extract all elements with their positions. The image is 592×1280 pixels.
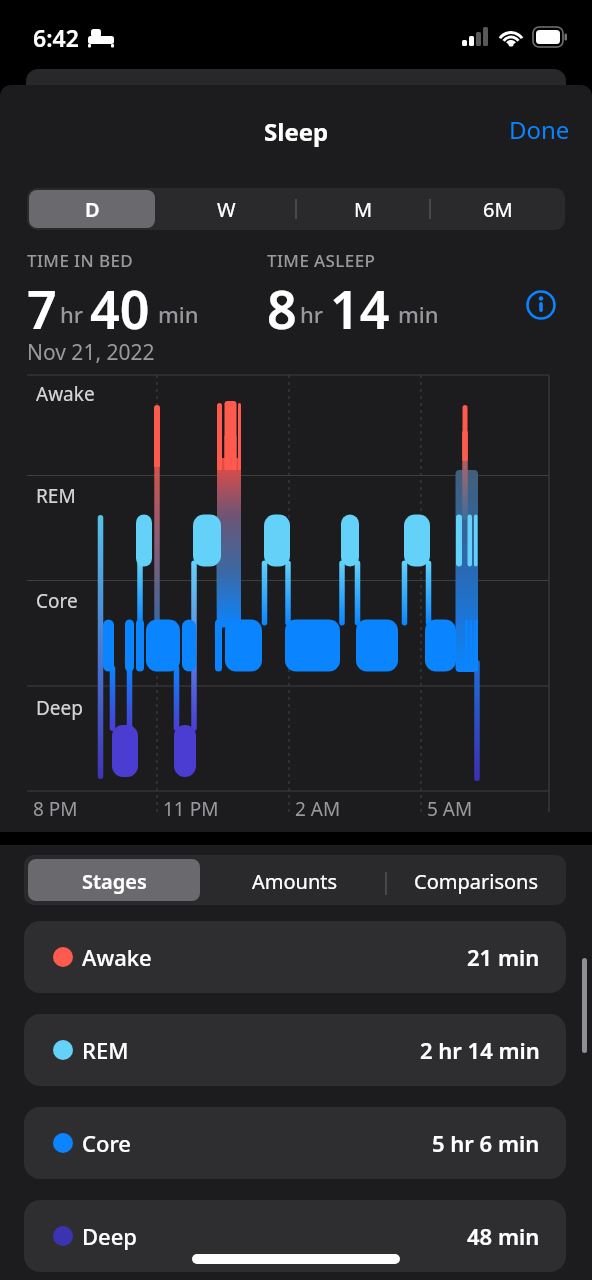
staticText: min bbox=[158, 299, 199, 329]
staticText: M bbox=[354, 196, 373, 223]
staticText: 6M bbox=[483, 196, 513, 223]
staticText: Deep bbox=[36, 695, 83, 721]
button[interactable] bbox=[29, 190, 155, 228]
button[interactable] bbox=[203, 855, 385, 905]
button[interactable]: Awake bbox=[24, 921, 566, 993]
staticText: 14 bbox=[330, 273, 390, 344]
staticText: 11 PM bbox=[163, 796, 219, 822]
staticText: 8 PM bbox=[33, 796, 78, 822]
staticText: hr bbox=[60, 299, 84, 329]
staticText: Awake bbox=[82, 942, 152, 972]
staticText: 40 bbox=[90, 273, 150, 344]
staticText: Amounts bbox=[252, 868, 338, 895]
staticText: REM bbox=[82, 1035, 129, 1065]
staticText: 2 hr 14 min bbox=[420, 1035, 540, 1065]
button[interactable]: 6M bbox=[430, 188, 565, 230]
staticText: min bbox=[398, 299, 439, 329]
staticText: hr bbox=[300, 299, 324, 329]
staticText: Core bbox=[36, 588, 78, 614]
button[interactable] bbox=[525, 289, 557, 321]
staticText: Awake bbox=[36, 381, 95, 407]
button[interactable]: Core bbox=[24, 1107, 566, 1179]
staticText: 2 AM bbox=[295, 796, 341, 822]
staticText: 5 AM bbox=[427, 796, 473, 822]
button[interactable]: Done bbox=[495, 112, 570, 146]
button[interactable]: D bbox=[27, 188, 157, 230]
staticText: 48 min bbox=[467, 1221, 540, 1251]
staticText: 21 min bbox=[467, 942, 540, 972]
button[interactable] bbox=[28, 859, 200, 901]
staticText: Done bbox=[509, 113, 570, 146]
staticText: TIME IN BED bbox=[27, 249, 134, 272]
staticText: 8 bbox=[267, 273, 297, 344]
button[interactable]: W bbox=[157, 188, 296, 230]
staticText: REM bbox=[36, 483, 76, 509]
button[interactable]: Deep bbox=[24, 1200, 566, 1272]
staticText: 7 bbox=[27, 273, 57, 344]
staticText: 5 hr 6 min bbox=[432, 1128, 540, 1158]
staticText: D bbox=[85, 196, 100, 223]
button[interactable]: M bbox=[296, 188, 430, 230]
staticText: Sleep bbox=[264, 115, 329, 148]
staticText: TIME ASLEEP bbox=[267, 249, 376, 272]
staticText: 6:42 bbox=[33, 22, 79, 53]
staticText: Stages bbox=[82, 868, 147, 895]
staticText: Nov 21, 2022 bbox=[27, 338, 155, 367]
staticText: Comparisons bbox=[414, 868, 538, 895]
button[interactable]: REM bbox=[24, 1014, 566, 1086]
button[interactable] bbox=[385, 855, 566, 905]
staticText: W bbox=[217, 196, 236, 223]
staticText: Deep bbox=[82, 1221, 137, 1251]
staticText: Core bbox=[82, 1128, 131, 1158]
